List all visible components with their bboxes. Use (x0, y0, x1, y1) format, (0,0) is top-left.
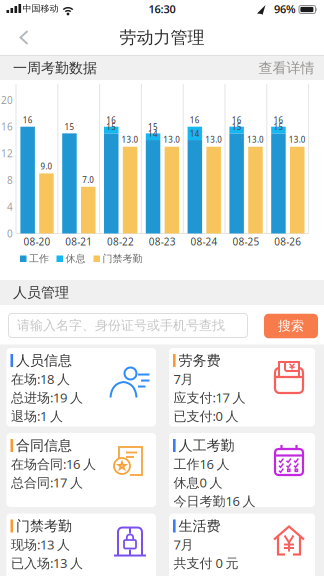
staticText: 搜索 (278, 318, 304, 334)
staticText: 14 (190, 128, 200, 139)
staticText: 08-20 (23, 235, 50, 248)
staticText: 工作16 人 (173, 455, 229, 473)
staticText: 劳动力管理 (119, 27, 204, 48)
staticText: 16 (232, 115, 242, 125)
staticText: 7月 (173, 370, 193, 388)
staticText: 现场:13 人 (11, 536, 70, 553)
staticText: 人员信息 (16, 352, 72, 369)
staticText: 退场:1 人 (11, 407, 63, 425)
staticText: 休息 (65, 253, 85, 265)
staticText: 15 (106, 122, 116, 132)
staticText: 已支付:0 人 (173, 407, 238, 425)
staticText: 16 (273, 115, 283, 125)
staticText: 工作 (29, 253, 49, 265)
button[interactable]: 生活费 (169, 513, 315, 576)
staticText: 15 (64, 122, 74, 132)
staticText: 13.0 (247, 134, 264, 145)
staticText: 中国移动 (22, 3, 58, 14)
staticText: 总合同:17 人 (11, 474, 83, 491)
staticText: 门禁考勤 (102, 253, 142, 265)
staticText: 13.0 (289, 134, 306, 145)
staticText: 休息0 人 (173, 474, 222, 491)
staticText: 08-21 (65, 235, 92, 248)
button[interactable]: 人工考勤 (169, 433, 315, 507)
staticText: 08-22 (107, 235, 134, 248)
staticText: 应支付:17 人 (173, 389, 245, 406)
button[interactable]: 人员信息 (6, 348, 156, 426)
button[interactable]: 搜索 (264, 314, 318, 338)
staticText: 13.0 (205, 134, 222, 145)
button[interactable]: 返回 (8, 20, 40, 54)
staticText: 已入场:13 人 (11, 554, 83, 572)
staticText: 人员管理 (13, 284, 69, 301)
staticText: 12 (1, 147, 13, 160)
staticText: 8 (7, 173, 13, 187)
staticText: 一周考勤数据 (13, 59, 97, 77)
staticText: 今日考勤16 人 (173, 492, 255, 510)
staticText: 13.0 (163, 134, 180, 145)
staticText: 合同信息 (16, 437, 72, 454)
staticText: 查看详情 (258, 59, 314, 77)
staticText: 在场:18 人 (11, 370, 70, 388)
button[interactable]: 请输入名字、身份证号或手机号查找 (8, 313, 247, 337)
staticText: 14 (148, 128, 158, 139)
staticText: 总进场:19 人 (11, 389, 83, 406)
staticText: 16 (23, 115, 33, 125)
staticText: 共支付 0 元 (173, 554, 238, 572)
staticText: 08-25 (232, 235, 259, 248)
staticText: 15 (232, 122, 242, 132)
staticText: 在场合同:16 人 (11, 455, 96, 473)
staticText: 9.0 (40, 161, 52, 172)
staticText: 08-26 (274, 235, 301, 248)
staticText: 16 (1, 120, 13, 133)
button[interactable]: 劳务费 (169, 348, 315, 426)
staticText: 16 (190, 115, 200, 125)
staticText: 生活费 (178, 517, 220, 535)
staticText: 13.0 (122, 134, 139, 145)
staticText: 7.0 (82, 174, 94, 185)
staticText: 4 (7, 200, 13, 213)
staticText: 08-23 (149, 235, 176, 248)
staticText: 20 (1, 93, 13, 107)
staticText: 请输入名字、身份证号或手机号查找 (17, 317, 225, 333)
button[interactable]: 门禁考勤 (6, 513, 156, 576)
button[interactable]: 查看详情 (256, 56, 316, 80)
staticText: 15 (148, 122, 158, 132)
staticText: 门禁考勤 (16, 517, 72, 535)
button[interactable]: 合同信息 (6, 433, 156, 507)
staticText: 15 (273, 122, 283, 132)
staticText: 人工考勤 (178, 437, 234, 454)
staticText: 08-24 (191, 235, 218, 248)
staticText: 劳务费 (178, 352, 220, 369)
staticText: 7月 (173, 536, 193, 553)
staticText: 16 (106, 115, 116, 125)
staticText: 96% (274, 2, 296, 16)
staticText: 0 (7, 227, 13, 240)
staticText: 16:30 (148, 2, 175, 16)
